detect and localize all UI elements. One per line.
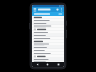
button[interactable] [32, 31, 64, 34]
button[interactable] [32, 58, 64, 61]
button[interactable] [32, 28, 64, 31]
button[interactable] [32, 12, 64, 16]
button[interactable] [32, 22, 64, 25]
button[interactable] [32, 61, 64, 62]
button[interactable] [32, 16, 64, 19]
button[interactable]: Back [32, 62, 42, 67]
button[interactable] [32, 25, 64, 28]
button[interactable] [32, 7, 64, 12]
button[interactable] [32, 43, 64, 46]
button[interactable] [32, 46, 64, 49]
button[interactable]: Home [42, 62, 53, 67]
button[interactable] [32, 55, 64, 58]
button[interactable] [32, 37, 64, 40]
button[interactable] [32, 49, 64, 52]
button[interactable] [32, 19, 64, 22]
button[interactable] [32, 34, 64, 37]
button[interactable] [32, 52, 64, 55]
button[interactable] [32, 40, 64, 43]
button[interactable]: Recents [53, 62, 64, 67]
